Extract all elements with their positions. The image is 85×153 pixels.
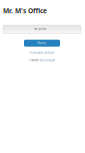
button[interactable]: View web version xyxy=(3,51,81,54)
staticText: Blogger xyxy=(44,58,55,62)
staticText: No posts. xyxy=(34,27,47,31)
button[interactable]: Home xyxy=(24,40,60,47)
staticText: Home xyxy=(37,41,46,45)
staticText: View web version xyxy=(29,51,54,54)
button[interactable]: Blogger xyxy=(44,58,55,62)
staticText: Mr. M's Office xyxy=(3,6,47,15)
staticText: Powered by xyxy=(29,58,44,62)
